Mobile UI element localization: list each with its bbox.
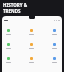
button[interactable] — [4, 57, 13, 63]
button[interactable] — [50, 57, 59, 63]
staticText: HISTORY & — [3, 2, 28, 8]
button[interactable] — [50, 29, 59, 35]
button[interactable] — [27, 57, 36, 63]
button[interactable] — [4, 43, 13, 49]
staticText: TRENDS — [3, 8, 21, 14]
button[interactable] — [27, 43, 36, 49]
button[interactable] — [27, 29, 36, 35]
button[interactable] — [50, 43, 59, 49]
button[interactable] — [4, 29, 13, 35]
